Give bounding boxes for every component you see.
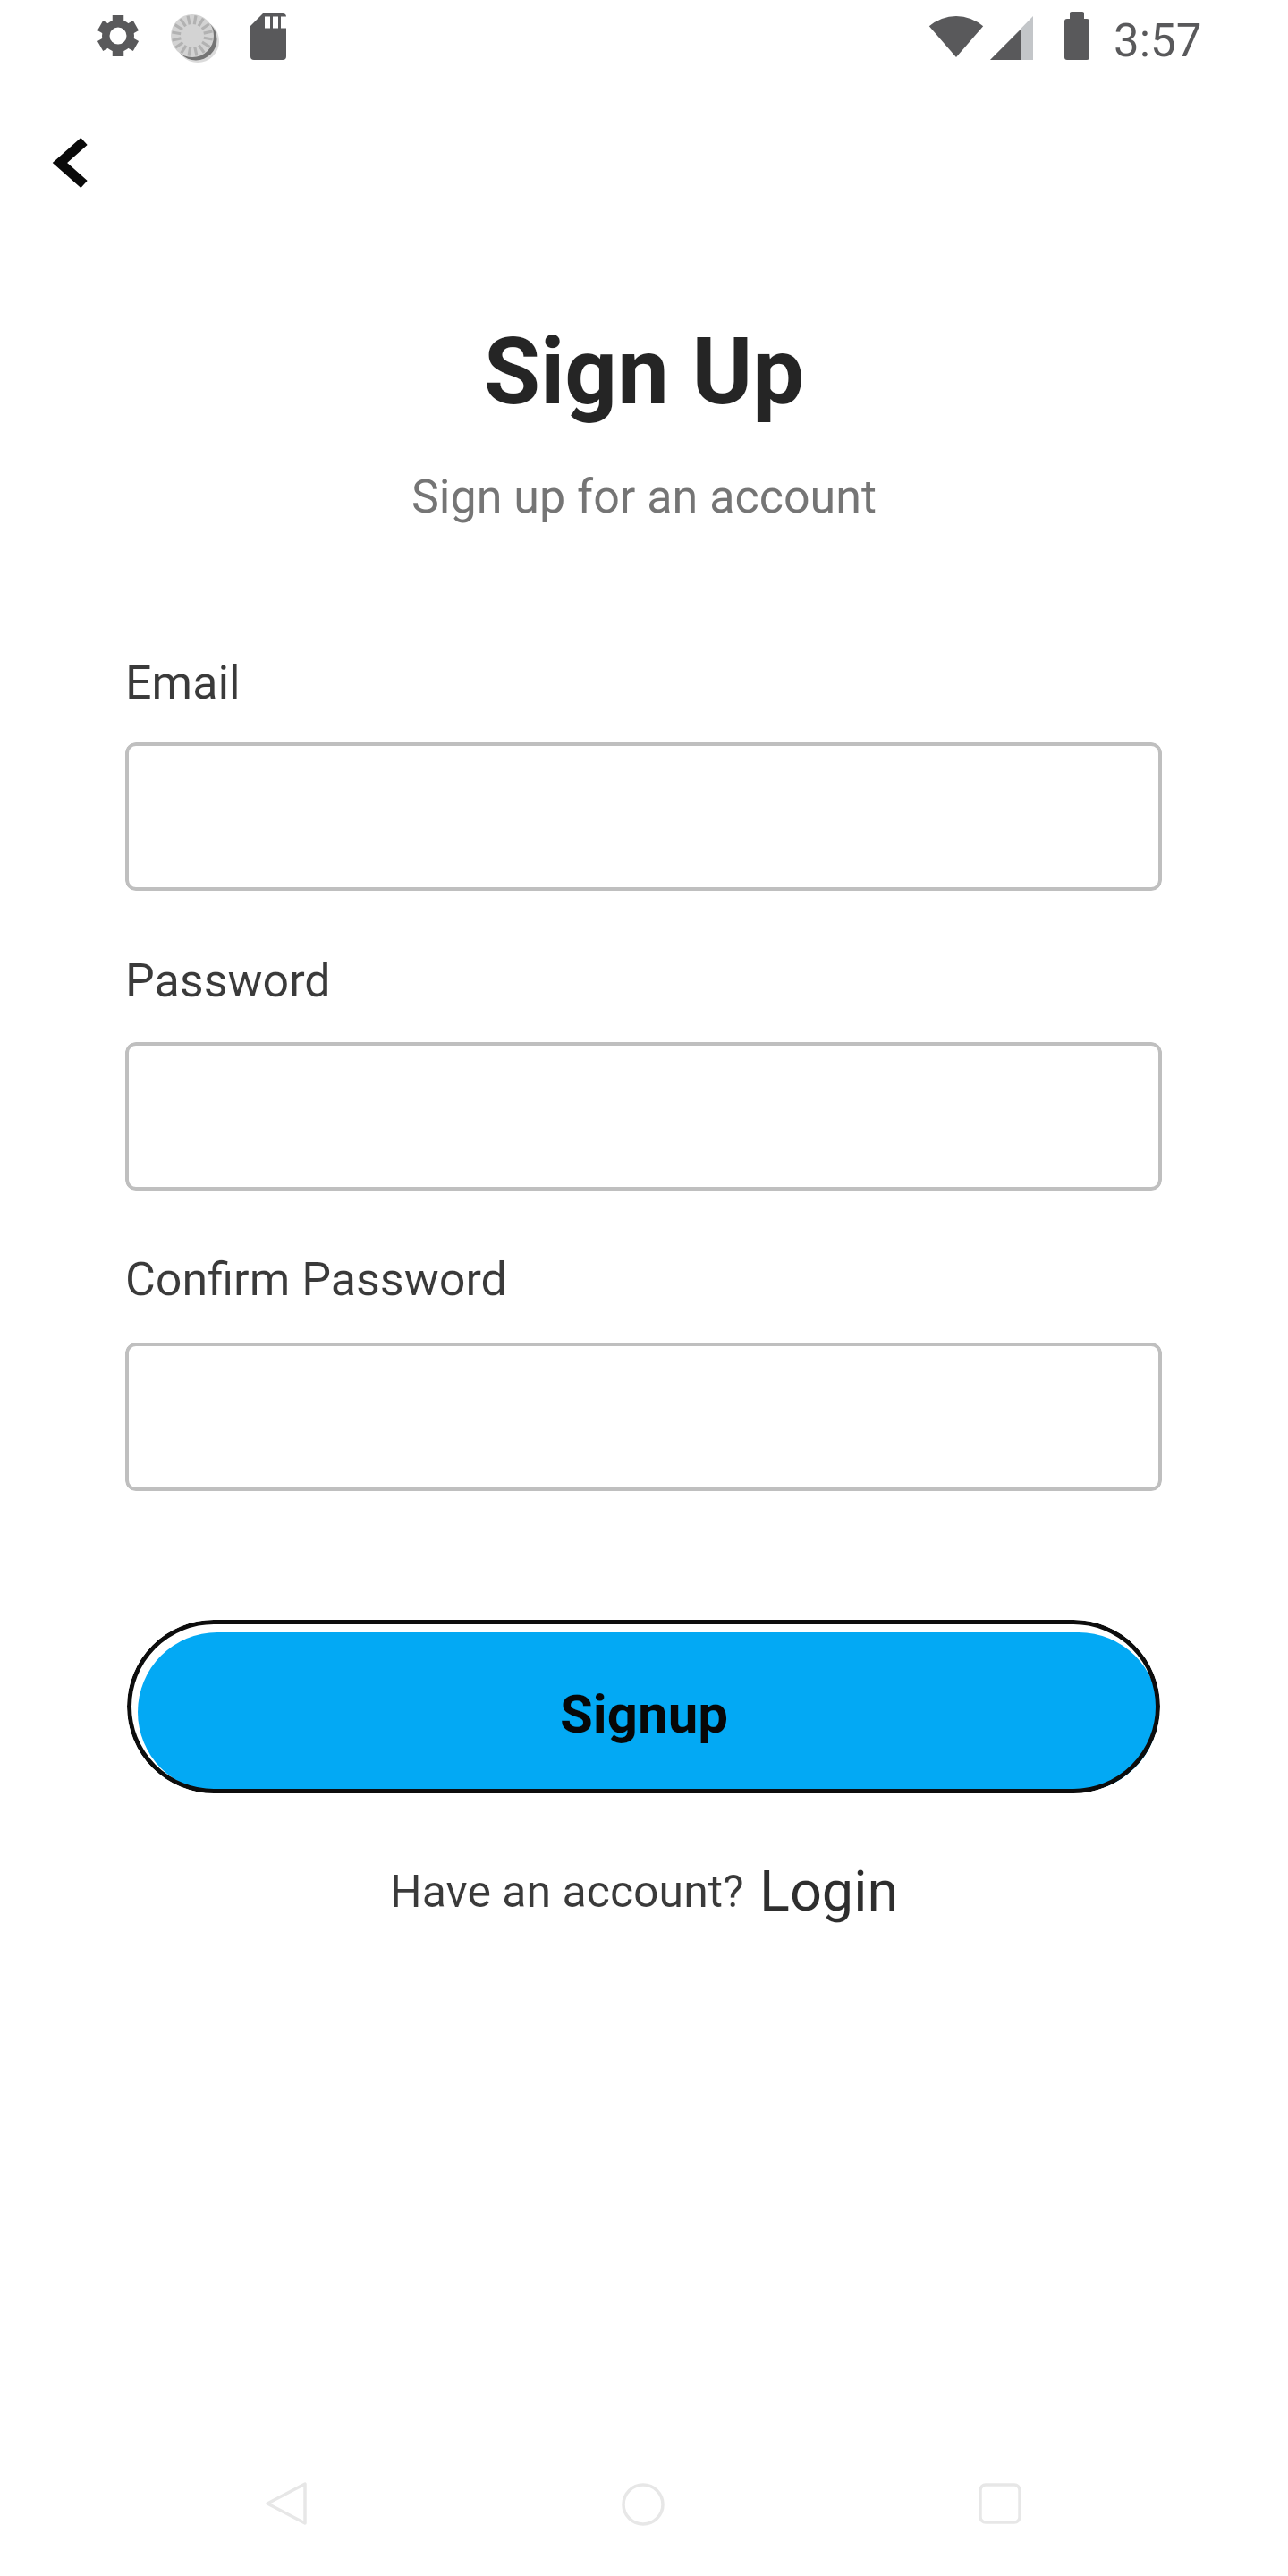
staticText: Password bbox=[125, 953, 331, 1008]
button[interactable] bbox=[36, 116, 107, 206]
staticText: Have an account? bbox=[390, 1866, 744, 1919]
staticText: Email bbox=[125, 656, 241, 710]
button[interactable] bbox=[125, 1042, 1162, 1191]
button[interactable]: Login bbox=[744, 1841, 914, 1930]
staticText: Signup bbox=[0, 1682, 1288, 1745]
staticText: Sign up for an account bbox=[0, 470, 1288, 524]
staticText: Login bbox=[759, 1859, 899, 1925]
staticText: Sign Up bbox=[0, 318, 1288, 426]
staticText: Confirm Password bbox=[125, 1252, 507, 1307]
button[interactable] bbox=[125, 742, 1162, 891]
button[interactable] bbox=[125, 1343, 1162, 1491]
button[interactable] bbox=[127, 1620, 1160, 1793]
staticText: 3:57 bbox=[1114, 14, 1202, 68]
